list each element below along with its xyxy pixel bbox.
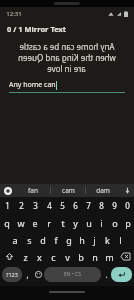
button[interactable]: c [46,248,60,265]
button[interactable]: q [0,214,14,231]
staticText: 1 [5,200,10,211]
button[interactable]: Emoji [32,267,44,282]
staticText: are in love [47,63,86,74]
button[interactable]: 1 [0,197,14,214]
button[interactable]: 2 [14,197,28,214]
button[interactable]: l [114,231,127,248]
staticText: j [93,234,96,246]
button[interactable]: e [28,214,42,231]
button[interactable]: t [56,214,69,231]
button[interactable]: fan [16,184,50,197]
staticText: 8 [99,200,104,211]
staticText: Any home can [9,80,56,90]
button[interactable]: ?123 [2,267,22,282]
staticText: 0 / 1 Mirror Text [7,24,67,34]
staticText: 3 [33,200,38,211]
staticText: ?123 [6,271,18,278]
staticText: o [112,217,118,229]
staticText: 0 [125,200,130,211]
button[interactable]: h [75,231,88,248]
button[interactable]: More suggestions [120,184,134,197]
button[interactable]: d [36,231,49,248]
button[interactable]: x [32,248,46,265]
button[interactable]: k [101,231,114,248]
button[interactable]: 0 [121,197,134,214]
button[interactable]: 6 [69,197,82,214]
button[interactable]: r [42,214,56,231]
staticText: 4 [47,200,52,211]
button[interactable]: s [22,231,36,248]
staticText: b [78,251,84,263]
button[interactable]: b [74,248,88,265]
staticText: y [73,217,78,229]
staticText: dam [96,186,110,195]
button[interactable]: m [102,248,116,265]
button[interactable]: Shift [0,248,18,265]
staticText: t [61,217,65,229]
staticText: when the King and Queen [18,52,116,63]
staticText: i [100,217,103,229]
staticText: , [26,269,29,280]
staticText: h [79,234,85,246]
staticText: s [27,234,32,246]
staticText: c [51,251,56,263]
staticText: m [105,251,114,263]
button[interactable]: 4 [42,197,56,214]
button[interactable]: i [95,214,108,231]
button[interactable]: f [49,231,62,248]
button[interactable]: 9 [108,197,121,214]
button[interactable]: , [22,267,32,282]
staticText: k [105,234,110,246]
staticText: g [66,234,72,246]
button[interactable]: dam [86,184,120,197]
button[interactable]: n [88,248,102,265]
button[interactable]: Backspace [116,248,134,265]
button[interactable]: Voice typing [0,184,16,197]
button[interactable]: Enter [111,267,132,282]
button[interactable]: . [101,267,111,282]
staticText: 12:31 [6,10,22,18]
staticText: a [12,234,18,246]
button[interactable]: 8 [95,197,108,214]
staticText: q [4,217,10,229]
button[interactable]: u [82,214,95,231]
staticText: . [105,269,108,280]
staticText: w [17,217,25,229]
button[interactable]: EN • CS [44,267,101,282]
button[interactable]: 7 [82,197,95,214]
button[interactable]: g [62,231,75,248]
button[interactable]: v [60,248,74,265]
staticText: cam [62,186,75,195]
staticText: 6 [73,200,78,211]
staticText: x [37,251,42,263]
button[interactable]: cam [51,184,85,197]
staticText: 2 [19,200,24,211]
button[interactable]: z [18,248,32,265]
staticText: f [54,234,58,246]
staticText: l [119,234,122,246]
staticText: d [40,234,46,246]
staticText: Any home can be a castle [19,41,115,52]
staticText: v [65,251,70,263]
staticText: p [125,217,131,229]
staticText: z [23,251,28,263]
button[interactable]: p [121,214,134,231]
staticText: 7 [86,200,91,211]
staticText: u [86,217,92,229]
staticText: r [47,217,51,229]
staticText: 9 [112,200,117,211]
button[interactable]: y [69,214,82,231]
staticText: e [32,217,38,229]
staticText: EN • CS [64,271,81,278]
button[interactable]: a [8,231,22,248]
button[interactable]: 3 [28,197,42,214]
button[interactable]: w [14,214,28,231]
button[interactable]: j [88,231,101,248]
button[interactable]: 5 [56,197,69,214]
staticText: n [92,251,98,263]
staticText: 5 [60,200,65,211]
button[interactable]: o [108,214,121,231]
staticText: fan [28,186,38,195]
